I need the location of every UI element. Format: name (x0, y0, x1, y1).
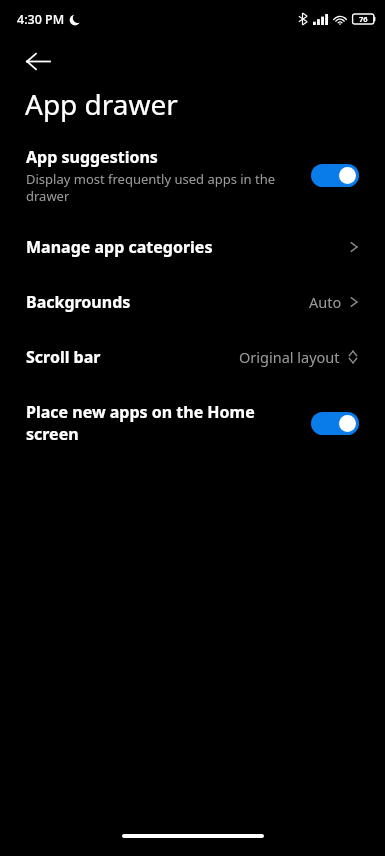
staticText: Auto (309, 292, 342, 312)
button[interactable]: App suggestions (0, 137, 385, 214)
staticText: 76 (359, 14, 368, 24)
staticText: App suggestions (26, 146, 158, 168)
staticText: Display most frequently used apps in the… (26, 170, 276, 205)
button[interactable]: Toggle on (311, 164, 359, 187)
staticText: Place new apps on the Home screen (26, 401, 255, 445)
staticText: App drawer (25, 85, 178, 123)
button[interactable]: Backgrounds (0, 282, 385, 322)
staticText: Original layout (239, 347, 340, 367)
staticText: Manage app categories (26, 236, 213, 258)
staticText: Backgrounds (26, 291, 131, 313)
button[interactable]: Toggle on (311, 412, 359, 435)
staticText: 4:30 PM (17, 11, 65, 28)
button[interactable]: Place new apps on the Home screen (0, 392, 385, 454)
button[interactable]: Back (15, 38, 61, 84)
staticText: Scroll bar (26, 346, 101, 368)
button[interactable]: Manage app categories (0, 227, 385, 267)
button[interactable]: Scroll bar (0, 337, 385, 377)
